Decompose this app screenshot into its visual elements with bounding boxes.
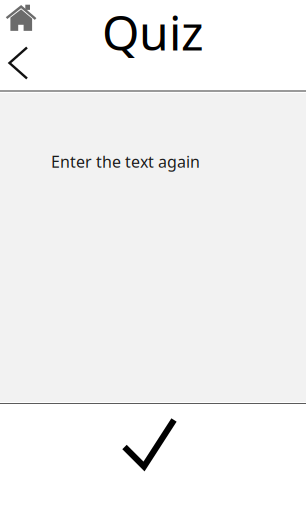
staticText: Quiz bbox=[102, 0, 204, 64]
button[interactable]: Submit bbox=[0, 0, 306, 512]
staticText: Enter the text again bbox=[51, 151, 200, 172]
button[interactable]: Home bbox=[0, 0, 40, 34]
button[interactable]: Back bbox=[0, 0, 40, 90]
